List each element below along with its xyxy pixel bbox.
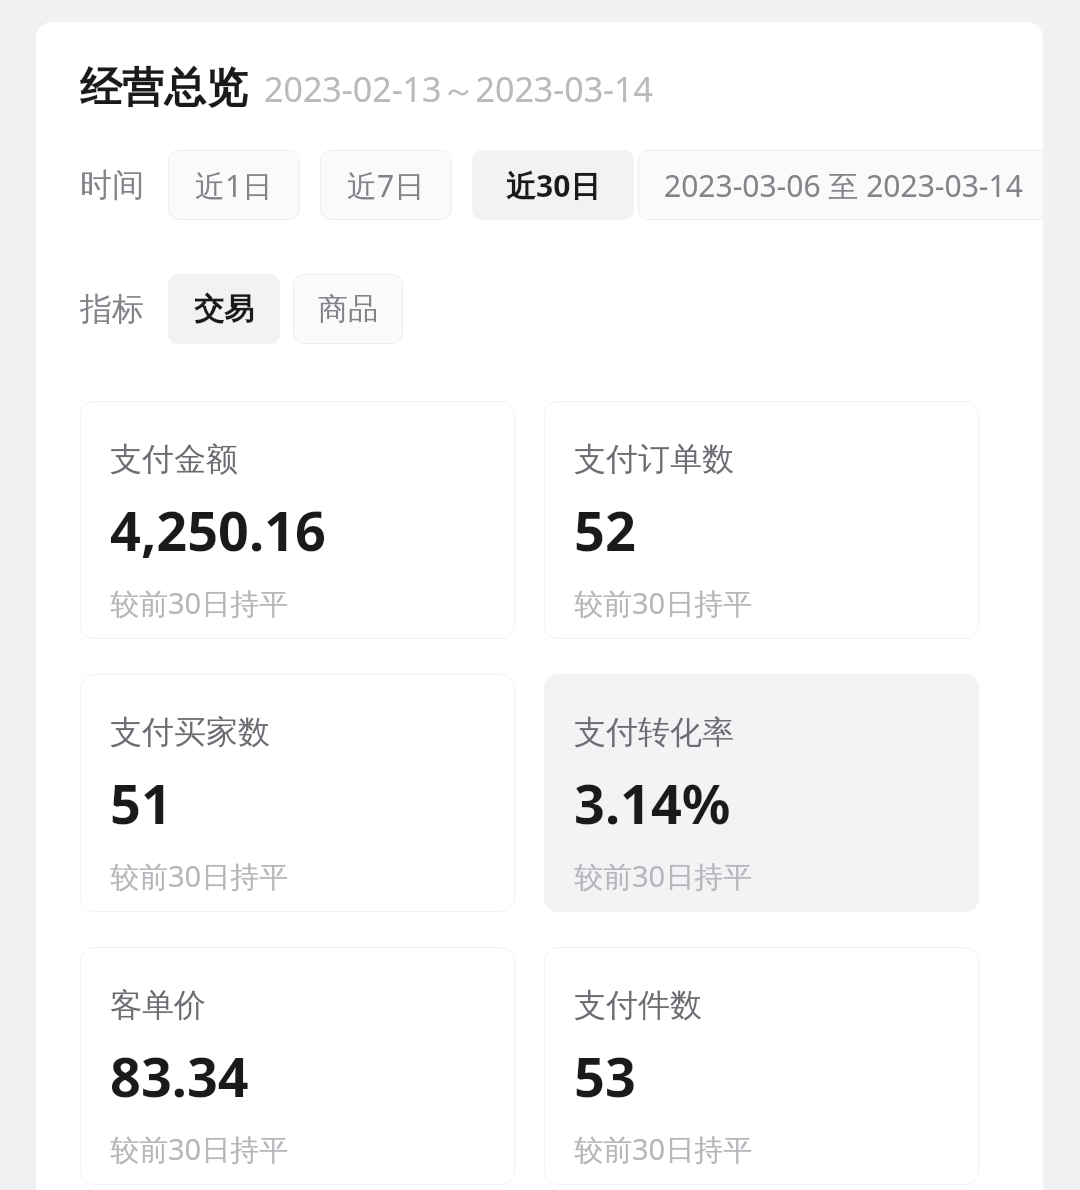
staticText: 支付转化率 bbox=[574, 712, 734, 752]
staticText: 4,250.16 bbox=[110, 493, 326, 567]
staticText: 交易 bbox=[194, 290, 254, 328]
button[interactable]: 支付买家数 bbox=[80, 674, 515, 912]
staticText: 较前30日持平 bbox=[110, 1129, 289, 1169]
staticText: 经营总览 bbox=[80, 62, 248, 115]
button[interactable]: 支付件数 bbox=[544, 947, 979, 1185]
staticText: 近30日 bbox=[506, 165, 601, 206]
button[interactable]: 商品 bbox=[293, 274, 403, 344]
button[interactable]: 支付订单数 bbox=[544, 401, 979, 639]
staticText: 83.34 bbox=[110, 1039, 249, 1113]
button[interactable]: 客单价 bbox=[80, 947, 515, 1185]
staticText: 较前30日持平 bbox=[110, 583, 289, 623]
staticText: 支付订单数 bbox=[574, 439, 734, 479]
staticText: 较前30日持平 bbox=[574, 856, 753, 896]
button[interactable]: 支付金额 bbox=[80, 401, 515, 639]
staticText: 支付买家数 bbox=[110, 712, 270, 752]
staticText: 近1日 bbox=[195, 165, 273, 206]
staticText: 53 bbox=[574, 1039, 636, 1113]
staticText: 较前30日持平 bbox=[110, 856, 289, 896]
staticText: 支付金额 bbox=[110, 439, 238, 479]
staticText: 支付件数 bbox=[574, 985, 702, 1025]
staticText: 2023-02-13～2023-03-14 bbox=[264, 66, 653, 112]
staticText: 指标 bbox=[80, 289, 144, 329]
button[interactable]: 支付转化率 bbox=[544, 674, 979, 912]
button[interactable]: 近7日 bbox=[320, 150, 452, 220]
staticText: 3.14% bbox=[574, 766, 731, 840]
staticText: 时间 bbox=[80, 165, 144, 205]
staticText: 较前30日持平 bbox=[574, 583, 753, 623]
button[interactable]: 近1日 bbox=[168, 150, 300, 220]
staticText: 2023-03-06 至 2023-03-14 bbox=[664, 165, 1023, 206]
staticText: 52 bbox=[574, 493, 636, 567]
staticText: 51 bbox=[110, 766, 172, 840]
button[interactable]: 近30日 bbox=[472, 150, 634, 220]
button[interactable]: 2023-03-06 至 2023-03-14 bbox=[638, 150, 1043, 220]
staticText: 近7日 bbox=[347, 165, 425, 206]
staticText: 商品 bbox=[318, 290, 378, 328]
button[interactable]: 交易 bbox=[168, 274, 280, 344]
staticText: 较前30日持平 bbox=[574, 1129, 753, 1169]
staticText: 客单价 bbox=[110, 985, 206, 1025]
